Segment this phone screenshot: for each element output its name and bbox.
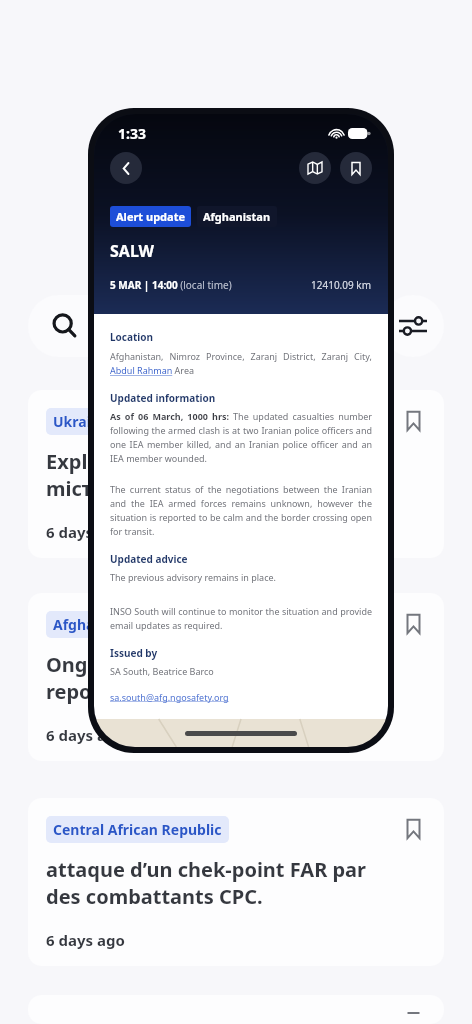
staticText: 5 MAR | 14:00 (local time) [110,278,232,292]
staticText: Updated information [110,391,216,405]
staticText: micт Kyiv region [46,475,209,502]
staticText: 6 days ago [46,930,125,950]
staticText: Alert update [116,209,185,224]
staticText: 12410.09 km [311,278,372,292]
staticText: As of 06 March, 1000 hrs: The updated ca… [110,410,372,465]
button[interactable]: Afghanistan [197,206,277,227]
staticText: Afghanistan [203,209,271,224]
staticText: 6 days ago [46,522,125,542]
staticText: reported [46,678,134,705]
button[interactable]: Back [110,152,142,184]
button[interactable]: Central African Republic [28,995,444,1024]
button[interactable]: Afghanistan [28,593,444,761]
button[interactable]: Bookmark [400,611,426,637]
staticText: 6 days ago [46,725,125,745]
button[interactable]: Ukraine [28,390,444,558]
button[interactable]: Search [28,295,372,357]
staticText: 1:33 [118,124,146,143]
staticText: Central African Republic [53,820,222,839]
staticText: Afghanistan [53,615,139,634]
staticText: Issued by [110,646,158,660]
other: Search [50,311,80,341]
button[interactable]: Central African Republic [28,798,444,966]
staticText: Ukraine [53,412,109,431]
staticText: des combattants CPC. [46,883,263,910]
staticText: SA South, Beatrice Barco [110,665,214,677]
button[interactable]: Bookmark [400,816,426,842]
staticText: Updated advice [110,552,188,566]
staticText: Afghanistan, Nimroz Province, Zaranj Dis… [110,350,372,377]
staticText: SALW [110,240,154,262]
button[interactable]: Filter [382,295,444,357]
button[interactable]: Save [340,152,372,184]
staticText: attaque d’un chek-point FAR par [46,856,367,883]
button[interactable]: sa.south@afg.ngosafety.org [110,691,229,703]
staticText: Ongoing clashes [46,651,211,678]
button[interactable]: Map [299,152,331,184]
button[interactable]: Bookmark [400,408,426,434]
staticText: INSO South will continue to monitor the … [110,605,372,632]
staticText: The current status of the negotiations b… [110,483,372,538]
staticText: Location [110,330,154,344]
staticText: The previous advisory remains in place. [110,571,276,583]
staticText: Explosion heard in [46,448,229,475]
button[interactable]: Alert update [110,206,191,227]
